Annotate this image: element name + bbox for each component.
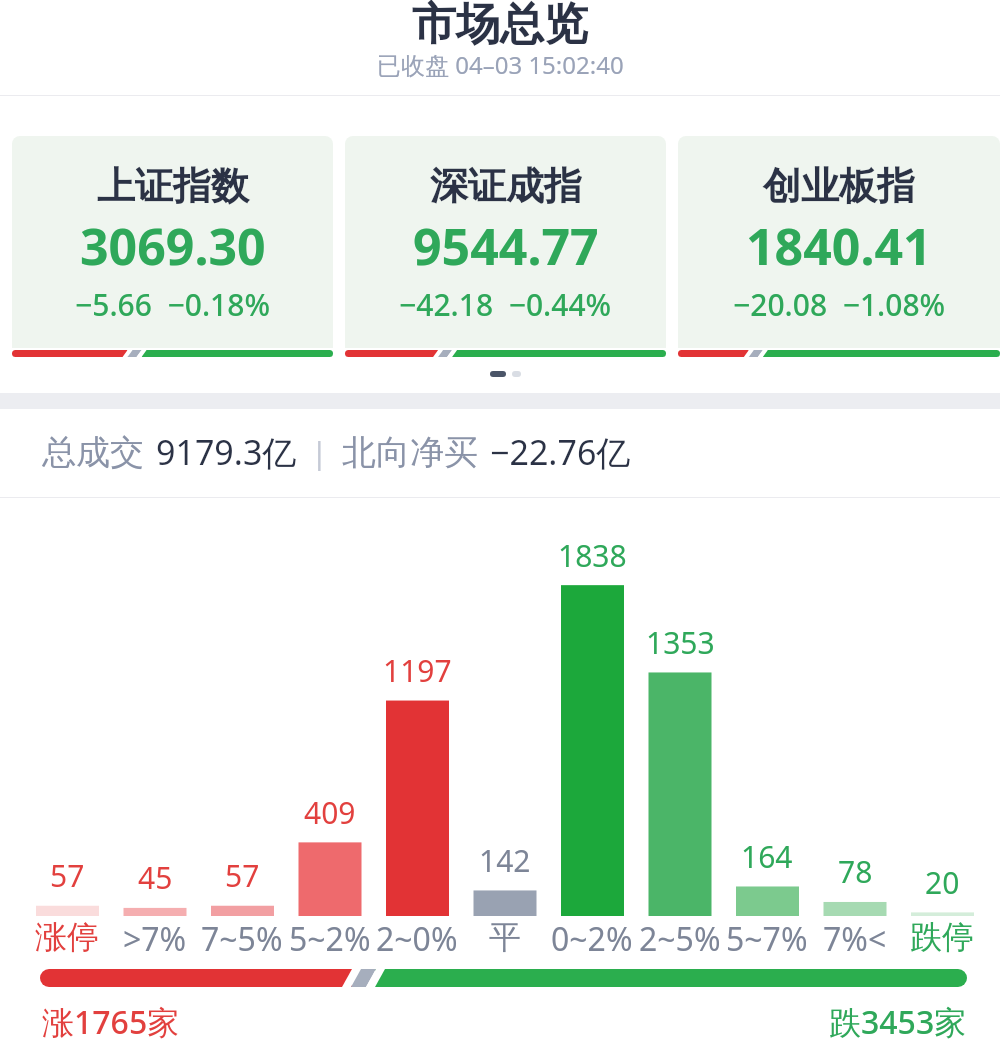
staticText: 平 <box>489 917 521 957</box>
staticText: 164 <box>741 836 793 877</box>
staticText: 北向净买 <box>342 431 478 474</box>
button[interactable]: 总成交 <box>42 429 631 475</box>
staticText: 142 <box>479 840 531 881</box>
staticText: 2~5% <box>639 917 721 961</box>
staticText: 1840.41 <box>746 212 932 280</box>
staticText: 1353 <box>646 622 715 663</box>
staticText: 5~2% <box>289 917 371 961</box>
staticText: 总成交 <box>42 431 144 474</box>
button[interactable]: 上证指数 <box>12 136 333 357</box>
staticText: 创业板指 <box>763 162 915 210</box>
staticText: 78 <box>838 851 873 892</box>
staticText: 3069.30 <box>80 212 266 280</box>
staticText: 57 <box>50 855 85 896</box>
staticText: 0~2% <box>551 917 633 961</box>
button[interactable]: 创业板指 <box>678 136 1000 357</box>
staticText: 1197 <box>383 650 452 691</box>
staticText: 7~5% <box>201 917 283 961</box>
staticText: 涨停 <box>35 917 99 957</box>
staticText: 20 <box>925 862 960 903</box>
button[interactable]: 深证成指 <box>345 136 666 357</box>
staticText: 45 <box>138 857 173 898</box>
staticText: 1838 <box>558 535 627 576</box>
staticText: −42.18 −0.44% <box>399 284 612 325</box>
staticText: 跌停 <box>910 917 974 957</box>
staticText: 已收盘 04–03 15:02:40 <box>377 48 624 81</box>
staticText: 上证指数 <box>97 162 249 210</box>
staticText: 57 <box>225 855 260 896</box>
staticText: 市场总览 <box>412 0 588 52</box>
staticText: 跌3453家 <box>829 1000 967 1044</box>
staticText: 5~7% <box>726 917 808 961</box>
staticText: 深证成指 <box>430 162 582 210</box>
staticText: | <box>311 432 328 473</box>
staticText: −5.66 −0.18% <box>75 284 270 325</box>
staticText: −20.08 −1.08% <box>733 284 946 325</box>
staticText: 7%< <box>823 917 887 961</box>
staticText: 2~0% <box>376 917 458 961</box>
staticText: 9544.77 <box>413 212 599 280</box>
staticText: 涨1765家 <box>42 1000 180 1044</box>
staticText: 409 <box>304 792 356 833</box>
staticText: >7% <box>123 917 187 961</box>
staticText: −22.76亿 <box>490 429 631 475</box>
staticText: 9179.3亿 <box>156 429 297 475</box>
